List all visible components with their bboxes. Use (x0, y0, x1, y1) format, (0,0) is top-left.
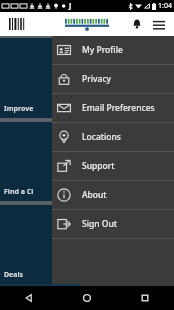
staticText: Email Preferences (82, 102, 155, 114)
button[interactable]: Back (0, 286, 58, 310)
staticText: Privacy (82, 73, 112, 85)
button[interactable]: Home (58, 286, 116, 310)
staticText: My Profile (82, 44, 123, 56)
button[interactable]: Recents (116, 286, 174, 310)
button[interactable]: Sign Out (52, 210, 174, 238)
staticText: About (82, 189, 107, 201)
button[interactable]: Privacy (52, 65, 174, 93)
staticText: J (69, 1, 72, 11)
button[interactable]: Scan barcode (6, 13, 28, 35)
button[interactable]: Notifications (126, 13, 148, 35)
staticText: Deals (4, 270, 24, 280)
button[interactable]: Support (52, 152, 174, 180)
staticText: Sign Out (82, 218, 118, 230)
staticText: 1:04 (158, 1, 172, 11)
button[interactable]: Menu (148, 13, 170, 35)
button[interactable]: Deals (0, 205, 174, 284)
staticText: Support (82, 160, 115, 172)
staticText: Find a Cl (4, 187, 34, 197)
button[interactable]: Locations (52, 123, 174, 151)
button[interactable]: Email Preferences (52, 94, 174, 122)
staticText: Locations (82, 131, 121, 143)
button[interactable]: Find a Cl (0, 122, 174, 201)
button[interactable]: Improve (0, 38, 174, 118)
button[interactable]: My Profile (52, 36, 174, 64)
staticText: Improve (4, 104, 34, 114)
button[interactable]: About (52, 181, 174, 209)
